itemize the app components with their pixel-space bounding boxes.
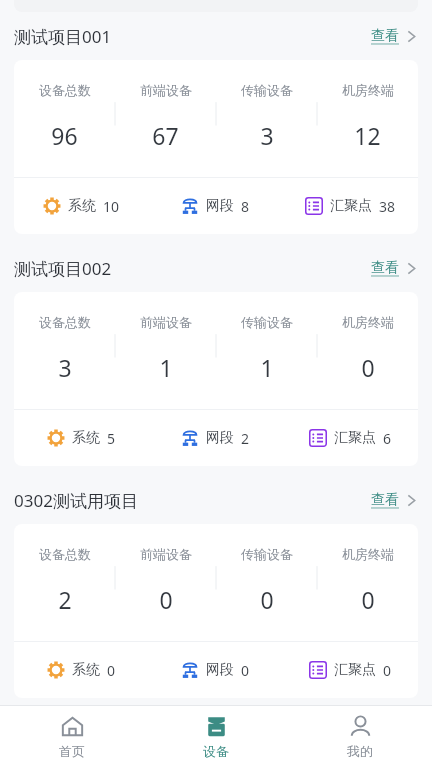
staticText: 2 [241,429,250,448]
button[interactable]: 查看 [361,255,418,281]
button[interactable]: 系统 [14,642,148,698]
staticText: 我的 [347,743,373,759]
staticText: 设备 [203,743,229,759]
staticText: 机房终端 [342,546,394,562]
staticText: 96 [51,120,78,151]
staticText: 0302测试用项目 [14,489,138,512]
staticText: 系统 [72,429,100,447]
staticText: 传输设备 [241,314,293,330]
staticText: 查看 [371,27,399,45]
staticText: 1 [260,352,274,383]
staticText: 机房终端 [342,82,394,98]
staticText: 网段 [206,429,234,447]
staticText: 3 [260,120,274,151]
staticText: 12 [354,120,381,151]
staticText: 首页 [59,743,85,759]
staticText: 网段 [206,661,234,679]
staticText: 67 [152,120,179,151]
staticText: 5 [107,429,116,448]
staticText: 0 [260,584,274,615]
staticText: 2 [58,584,72,615]
staticText: 查看 [371,259,399,277]
button[interactable]: 系统 [14,178,148,234]
button[interactable]: 汇聚点 [283,642,418,698]
staticText: 汇聚点 [334,661,376,679]
button[interactable]: 首页 [0,706,144,768]
staticText: 设备总数 [39,82,91,98]
staticText: 测试项目002 [14,257,112,280]
button[interactable]: 汇聚点 [283,178,418,234]
button[interactable]: 网段 [148,178,283,234]
staticText: 设备总数 [39,314,91,330]
staticText: 10 [103,197,120,216]
button[interactable]: 网段 [148,410,283,466]
staticText: 0 [361,352,375,383]
staticText: 网段 [206,197,234,215]
staticText: 前端设备 [140,546,192,562]
button[interactable]: 设备总数 [14,60,418,234]
button[interactable]: 我的 [288,706,432,768]
staticText: 0 [361,584,375,615]
staticText: 前端设备 [140,314,192,330]
button[interactable]: 系统 [14,410,148,466]
staticText: 机房终端 [342,314,394,330]
staticText: 系统 [68,197,96,215]
staticText: 传输设备 [241,546,293,562]
staticText: 测试项目001 [14,25,112,48]
button[interactable]: 网段 [148,642,283,698]
button[interactable]: 查看 [361,23,418,49]
staticText: 38 [379,197,396,216]
staticText: 前端设备 [140,82,192,98]
button[interactable]: 设备总数 [14,292,418,466]
staticText: 3 [58,352,72,383]
staticText: 8 [241,197,250,216]
staticText: 汇聚点 [330,197,372,215]
staticText: 0 [241,661,250,680]
staticText: 汇聚点 [334,429,376,447]
staticText: 6 [383,429,392,448]
staticText: 系统 [72,661,100,679]
staticText: 0 [159,584,173,615]
staticText: 查看 [371,491,399,509]
staticText: 1 [159,352,173,383]
staticText: 设备总数 [39,546,91,562]
button[interactable]: 设备 [144,706,288,768]
staticText: 0 [107,661,116,680]
staticText: 传输设备 [241,82,293,98]
button[interactable]: 查看 [361,487,418,513]
button[interactable]: 汇聚点 [283,410,418,466]
button[interactable]: 设备总数 [14,524,418,698]
staticText: 0 [383,661,392,680]
